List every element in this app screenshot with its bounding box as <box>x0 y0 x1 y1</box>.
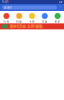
staticText: 更多 <box>55 20 61 23</box>
staticText: LTE <box>59 0 62 4</box>
staticText: 充值 <box>42 20 48 23</box>
staticText: 转账 <box>16 20 22 23</box>
staticText: 红包 <box>3 20 9 23</box>
staticText: 限时活动 立即领取 <box>10 24 43 29</box>
staticText: Search <box>4 6 12 9</box>
staticText: ··· <box>59 6 62 9</box>
staticText: 卡券 <box>29 20 35 23</box>
staticText: 9:41 <box>2 0 9 4</box>
